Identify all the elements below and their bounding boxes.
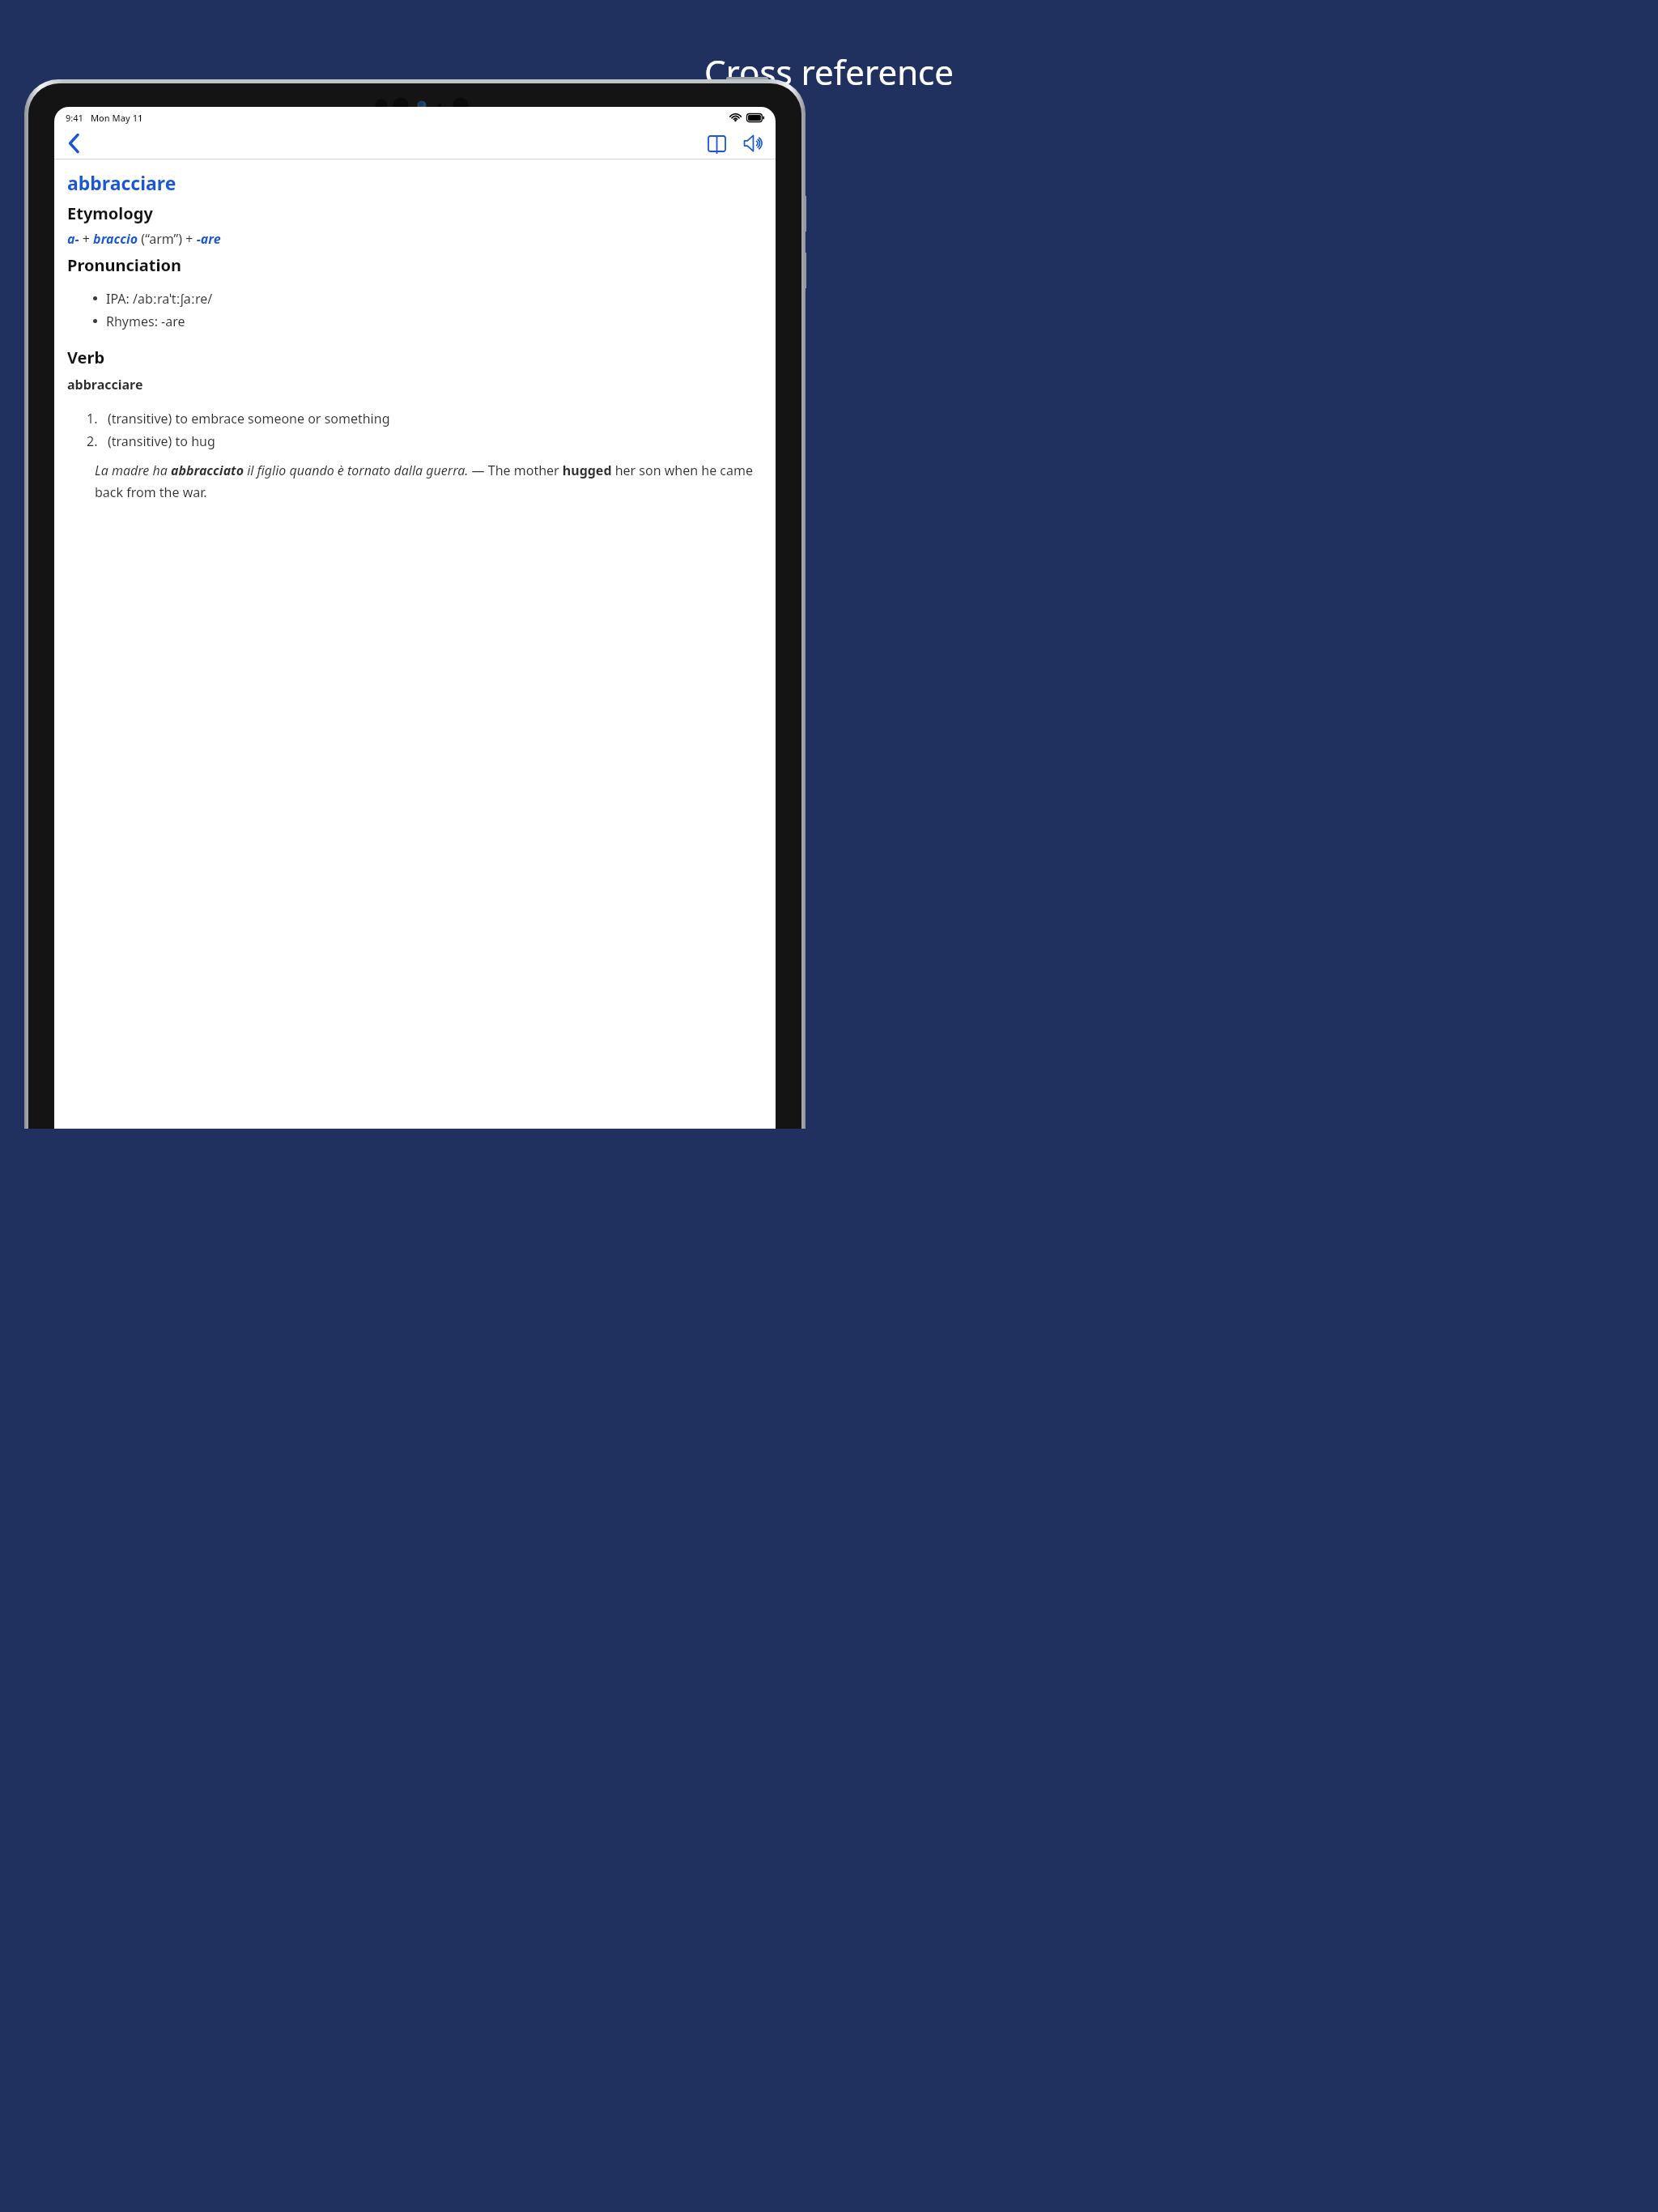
staticText: (transitive) to embrace someone or somet… [108,410,390,428]
staticText: 1. [87,410,98,428]
staticText: 9:41 [66,112,83,124]
staticText: Etymology [67,202,153,224]
staticText: Mon May 11 [91,112,143,124]
button[interactable]: Two page view [698,128,735,159]
button[interactable]: Back [54,128,93,159]
staticText: Verb [67,347,105,368]
staticText: abbracciare [67,170,176,195]
button[interactable]: Pronounce [735,128,774,159]
staticText: Rhymes: -are [106,313,185,330]
staticText: 2. [87,432,98,450]
staticText: La madre ha abbracciato il figlio quando… [95,462,763,501]
staticText: a- + braccio (“arm”) + -are [67,230,221,248]
staticText: abbracciare [67,376,143,393]
staticText: IPA: /abːraˈtːʃaːre/ [106,290,213,308]
button[interactable]: abbracciare [67,170,176,195]
staticText: Pronunciation [67,254,181,276]
staticText: Cross reference [704,49,954,95]
staticText: (transitive) to hug [108,432,215,450]
